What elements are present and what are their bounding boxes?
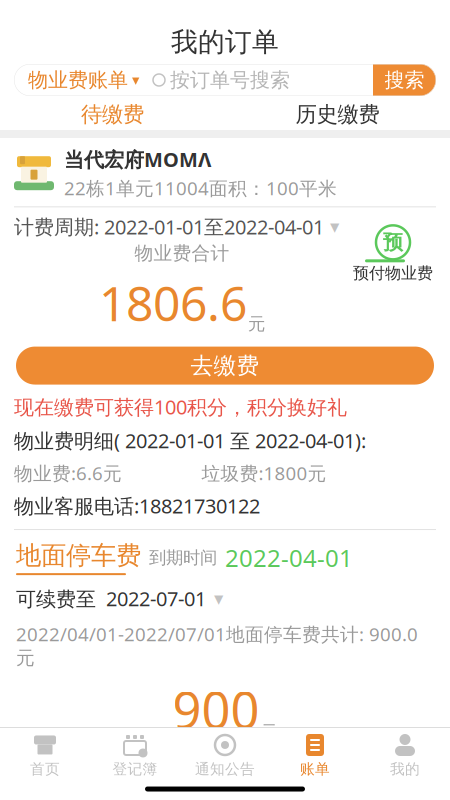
button[interactable]: 可续费至 2022-07-01 (0, 575, 450, 612)
staticText: 垃圾费:1800元 (201, 461, 326, 485)
staticText: 我的订单 (171, 26, 279, 58)
staticText: 物业费账单 (28, 68, 128, 92)
staticText: 2022/04/01-2022/07/01地面停车费共计: 900.0元 (16, 622, 418, 669)
staticText: 物业客服电话:18821730122 (14, 492, 260, 519)
staticText: 元 (260, 721, 277, 743)
staticText: 900 (172, 675, 259, 743)
button[interactable]: 计费周期: 2022-01-01至2022-04-01 (14, 213, 339, 240)
staticText: 去缴费 (190, 352, 259, 379)
staticText: 按订单号搜索 (170, 68, 290, 92)
staticText: 预付物业费 (353, 263, 433, 283)
staticText: 22栋1单元11004面积：100平米 (64, 176, 337, 200)
staticText: ▾ (330, 216, 339, 237)
staticText: 物业费:6.6元 (14, 461, 122, 485)
staticText: 账单 (300, 760, 330, 778)
staticText: 元 (248, 313, 265, 335)
staticText: 预 (383, 230, 403, 255)
button[interactable]: 历史缴费 (225, 93, 450, 133)
staticText: 历史缴费 (295, 101, 379, 128)
button[interactable]: 账单 (270, 726, 360, 780)
staticText: 登记簿 (112, 760, 157, 778)
button[interactable]: 通知公告 (180, 726, 270, 780)
button[interactable]: 去续费 (16, 755, 434, 793)
staticText: 计费周期: 2022-01-01至2022-04-01 (14, 213, 324, 240)
staticText: 去续费 (190, 760, 259, 788)
button[interactable]: 首页 (0, 726, 90, 780)
staticText: 到期时间 (149, 547, 217, 568)
staticText: 我的 (390, 760, 420, 778)
button[interactable]: 搜索 (373, 64, 436, 96)
staticText: 地面停车费 (16, 540, 141, 571)
staticText: 待缴费 (81, 101, 144, 128)
staticText: 物业费合计 (134, 242, 229, 265)
staticText: ▾ (132, 72, 139, 88)
staticText: 通知公告 (195, 760, 255, 778)
staticText: 可续费至 2022-07-01 (16, 585, 206, 612)
staticText: 现在缴费可获得100积分，积分换好礼 (14, 394, 347, 420)
button[interactable]: 预付物业费 (350, 207, 436, 283)
staticText: 首页 (30, 760, 60, 778)
staticText: 2022-04-01 (225, 542, 353, 574)
staticText: 搜索 (384, 68, 424, 92)
button[interactable]: 去缴费 (16, 347, 434, 385)
staticText: 当代宏府MOMΛ (64, 146, 211, 173)
button[interactable]: 物业费账单 (14, 68, 147, 92)
button[interactable]: 我的 (360, 726, 450, 780)
staticText: 物业费明细( 2022-01-01 至 2022-04-01): (14, 427, 366, 454)
staticText: ▾ (214, 588, 223, 609)
button[interactable]: 待缴费 (0, 93, 225, 133)
button[interactable]: 登记簿 (90, 726, 180, 780)
staticText: 1806.6 (99, 271, 247, 334)
